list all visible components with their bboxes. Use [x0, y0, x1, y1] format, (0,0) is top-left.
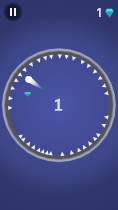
button[interactable]: Pause — [3, 2, 23, 22]
button[interactable]: 1 — [96, 3, 114, 21]
staticText: 1 — [96, 4, 103, 20]
